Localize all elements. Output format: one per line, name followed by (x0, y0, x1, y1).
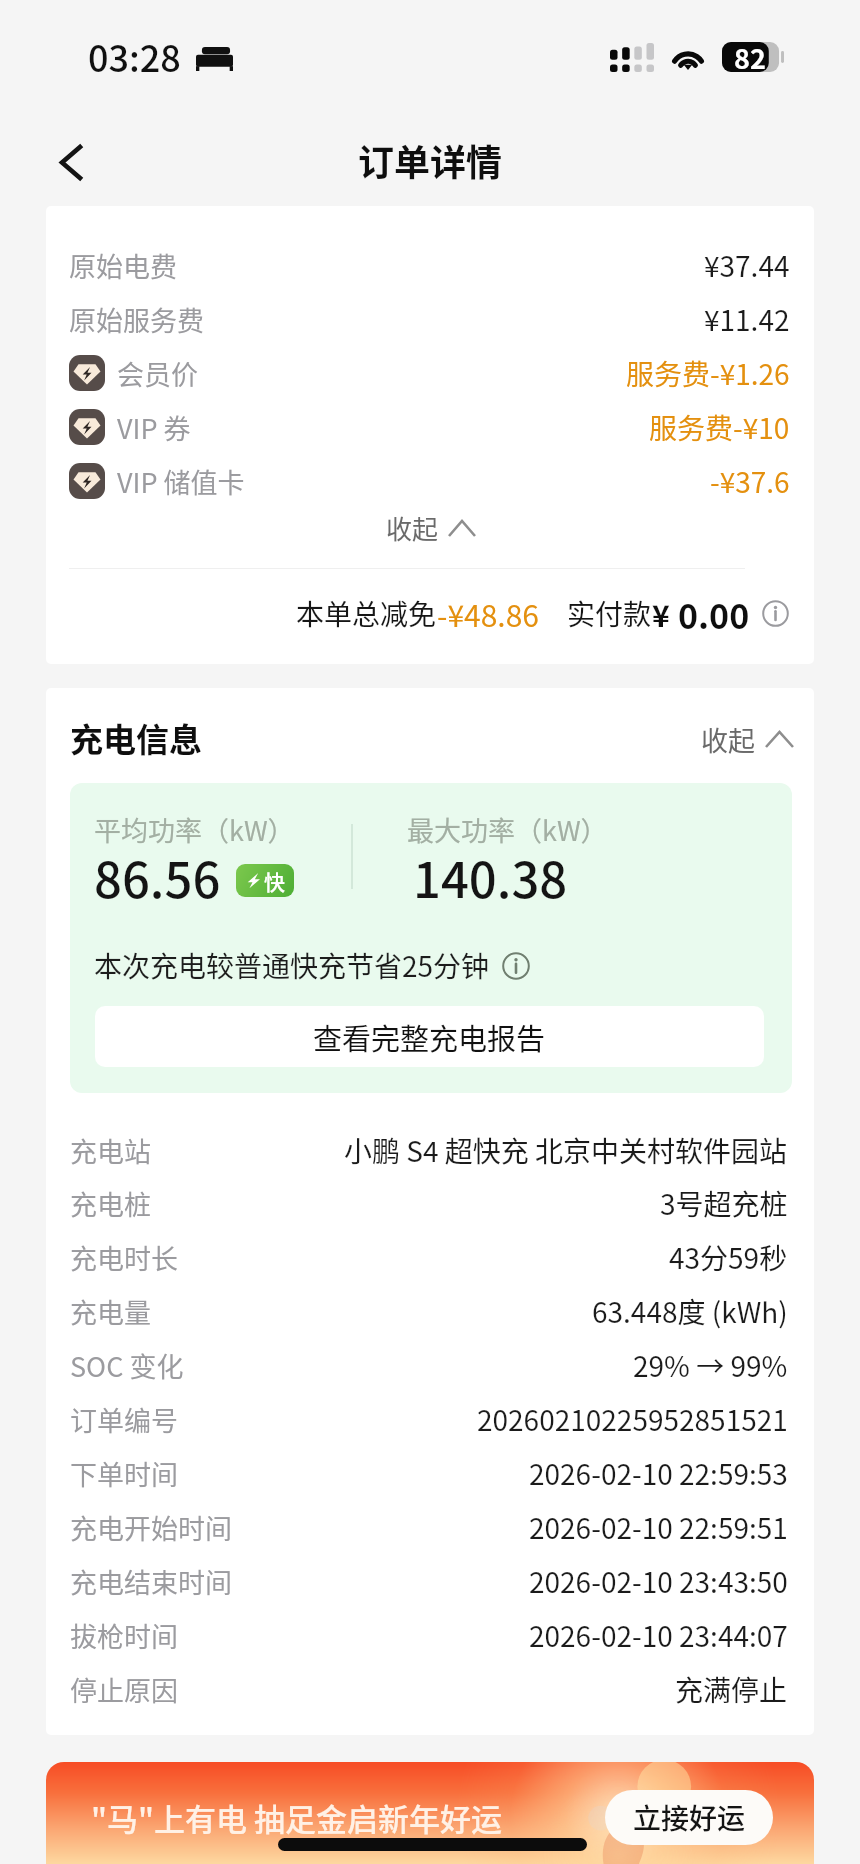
staticText: 充电桩 (70, 1184, 151, 1223)
staticText: 充电时长 (70, 1238, 178, 1277)
staticText: 充电站 (70, 1131, 151, 1170)
staticText: 停止原因 (70, 1670, 178, 1709)
staticText: 充电开始时间 (70, 1508, 232, 1547)
staticText: 查看完整充电报告 (313, 1016, 546, 1058)
staticText: 2026-02-10 22:59:51 (529, 1507, 788, 1548)
staticText: 小鹏 S4 超快充 北京中关村软件园站 (344, 1130, 788, 1171)
staticText: 充电结束时间 (70, 1562, 232, 1601)
staticText: 2026-02-10 22:59:53 (529, 1453, 788, 1494)
button[interactable]: 收起 (701, 720, 793, 759)
staticText: -¥37.6 (710, 461, 790, 502)
staticText: 0.00 (678, 590, 750, 636)
staticText: VIP 储值卡 (117, 462, 245, 501)
button[interactable]: "马"上有电 抽足金启新年好运 (46, 1762, 814, 1864)
staticText: 拔枪时间 (70, 1616, 178, 1655)
staticText: 3号超充桩 (660, 1183, 788, 1224)
staticText: 63.448度 (kWh) (592, 1291, 788, 1332)
staticText: 2026-02-10 23:44:07 (529, 1615, 788, 1656)
staticText: ¥ (652, 592, 670, 635)
staticText: 最大功率（kW） (407, 810, 608, 849)
staticText: 会员价 (117, 354, 198, 393)
staticText: 实付款 (567, 593, 652, 634)
staticText: 订单编号 (70, 1400, 178, 1439)
button[interactable]: Back (45, 136, 97, 188)
staticText: 本次充电较普通快充节省25分钟 (94, 945, 490, 986)
staticText: 收起 (386, 509, 439, 547)
staticText: 43分59秒 (669, 1237, 788, 1278)
staticText: 原始电费 (69, 246, 177, 285)
staticText: 订单详情 (358, 134, 503, 186)
staticText: 140.38 (413, 841, 568, 912)
staticText: 服务费-¥1.26 (626, 353, 790, 394)
staticText: 充电信息 (70, 714, 202, 762)
staticText: 86.56 (94, 841, 221, 912)
staticText: 原始服务费 (69, 300, 204, 339)
staticText: VIP 券 (117, 408, 191, 447)
staticText: 平均功率（kW） (94, 810, 295, 849)
staticText: ¥11.42 (704, 299, 790, 340)
staticText: 20260210225952851521 (477, 1399, 788, 1440)
staticText: 充电量 (70, 1292, 151, 1331)
staticText: 快 (264, 866, 285, 896)
staticText: 服务费-¥10 (649, 407, 790, 448)
staticText: 03:28 (88, 30, 181, 82)
staticText: -¥48.86 (437, 592, 539, 635)
staticText: "马"上有电 抽足金启新年好运 (91, 1795, 503, 1840)
staticText: 充满停止 (675, 1669, 788, 1710)
button[interactable]: 收起 (46, 506, 814, 550)
staticText: 82 (734, 38, 766, 77)
staticText: 29% → 99% (633, 1345, 788, 1386)
staticText: ¥37.44 (704, 245, 790, 286)
staticText: SOC 变化 (70, 1346, 184, 1385)
staticText: 收起 (701, 720, 755, 759)
staticText: 立接好运 (633, 1797, 746, 1838)
staticText: 下单时间 (70, 1454, 178, 1493)
staticText: 2026-02-10 23:43:50 (529, 1561, 788, 1602)
button[interactable]: 查看完整充电报告 (95, 1006, 764, 1067)
staticText: 本单总减免 (296, 593, 437, 634)
button[interactable]: 立接好运 (605, 1790, 773, 1845)
